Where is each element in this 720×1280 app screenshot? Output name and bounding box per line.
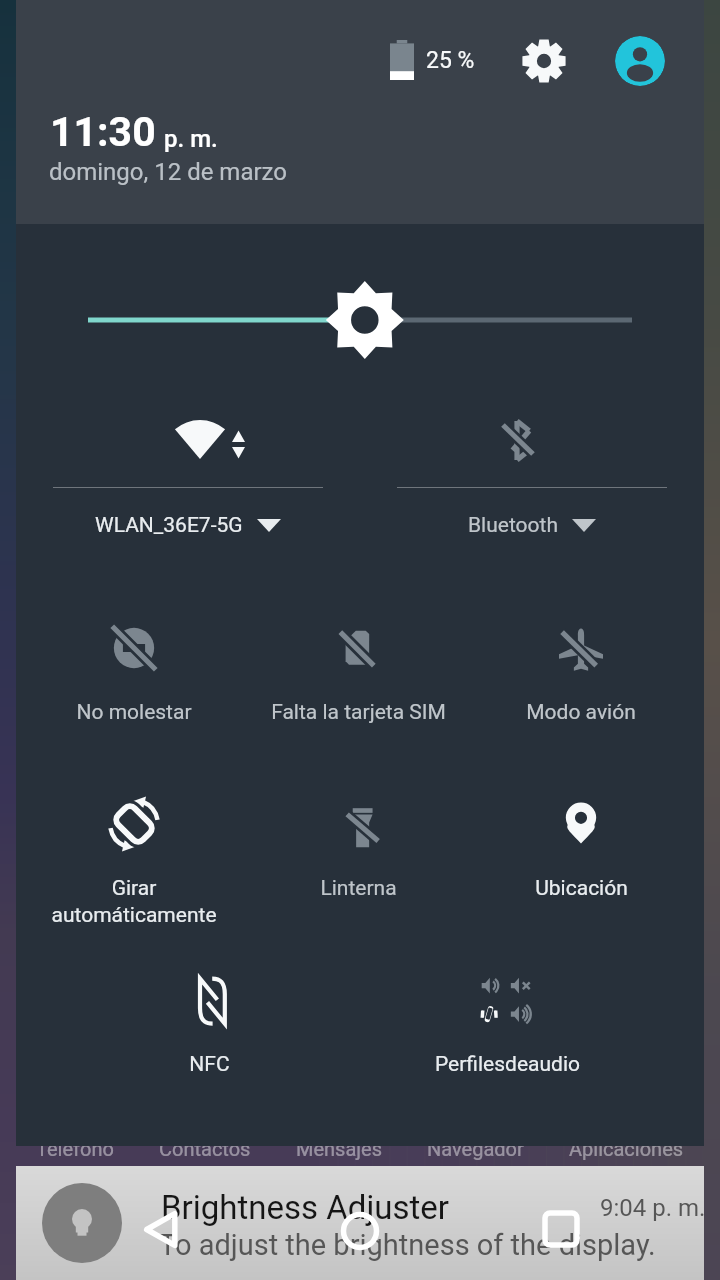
- button[interactable]: Perfilesdeaudio: [392, 966, 622, 1116]
- staticText: 9:04 p. m.: [600, 1194, 706, 1222]
- staticText: Teléfono: [36, 1137, 114, 1160]
- button[interactable]: Falta la tarjeta SIM: [243, 614, 473, 764]
- staticText: WLAN_36E7-5G: [95, 513, 243, 538]
- staticText: No molestar: [76, 700, 192, 725]
- button[interactable]: Ubicación: [466, 790, 696, 940]
- button[interactable]: Brightness Adjuster: [16, 1166, 704, 1280]
- staticText: Contactos: [159, 1137, 251, 1160]
- staticText: Linterna: [320, 876, 397, 901]
- staticText: Modo avión: [526, 700, 636, 725]
- staticText: Falta la tarjeta SIM: [271, 700, 446, 725]
- staticText: NFC: [189, 1052, 230, 1077]
- staticText: domingo, 12 de marzo: [49, 158, 287, 186]
- staticText: Ubicación: [535, 876, 628, 901]
- button[interactable]: Girar automáticamente: [19, 790, 249, 940]
- staticText: Bluetooth: [468, 513, 558, 538]
- staticText: To adjust the brightness of the display.: [159, 1228, 656, 1262]
- button[interactable]: NFC: [94, 966, 324, 1116]
- staticText: Perfilesdeaudio: [435, 1052, 580, 1077]
- staticText: Girar automáticamente: [51, 876, 217, 928]
- staticText: p. m.: [164, 125, 218, 153]
- button[interactable]: Bluetooth: [360, 400, 704, 580]
- button[interactable]: Brightness: [16, 250, 704, 390]
- staticText: 25 %: [426, 47, 475, 74]
- staticText: Mensajes: [296, 1137, 383, 1160]
- staticText: 11:30: [50, 108, 156, 156]
- button[interactable]: WLAN_36E7-5G: [16, 400, 360, 580]
- button[interactable]: User profile: [615, 36, 665, 86]
- button[interactable]: No molestar: [19, 614, 249, 764]
- button[interactable]: Settings: [521, 38, 567, 84]
- button[interactable]: Recent apps: [541, 1209, 581, 1249]
- button[interactable]: Home: [339, 1210, 381, 1252]
- staticText: Brightness Adjuster: [161, 1188, 449, 1227]
- staticText: Aplicaciones: [569, 1137, 684, 1160]
- button[interactable]: Linterna: [243, 790, 473, 940]
- staticText: Navegador: [427, 1137, 524, 1160]
- button[interactable]: Back: [143, 1211, 180, 1248]
- button[interactable]: Modo avión: [466, 614, 696, 764]
